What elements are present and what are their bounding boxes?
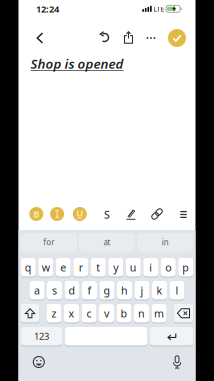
button[interactable]: j bbox=[134, 281, 149, 299]
button[interactable]: Link bbox=[150, 210, 163, 217]
staticText: u bbox=[130, 260, 137, 274]
staticText: U bbox=[76, 207, 83, 219]
button[interactable]: Undo bbox=[99, 31, 110, 42]
button[interactable]: for bbox=[21, 233, 77, 251]
staticText: l bbox=[175, 283, 178, 297]
button[interactable]: Dictate bbox=[172, 355, 183, 369]
button[interactable]: Delete bbox=[173, 304, 193, 322]
button[interactable]: Back bbox=[35, 31, 44, 44]
button[interactable]: k bbox=[152, 281, 167, 299]
staticText: q bbox=[25, 260, 32, 274]
staticText: a bbox=[34, 283, 40, 297]
button[interactable]: Done bbox=[168, 29, 186, 47]
button[interactable]: o bbox=[161, 258, 176, 276]
staticText: h bbox=[121, 283, 128, 297]
staticText: i bbox=[149, 260, 152, 274]
button[interactable]: v bbox=[99, 304, 114, 322]
button[interactable]: z bbox=[46, 304, 61, 322]
button[interactable]: l bbox=[169, 281, 184, 299]
button[interactable]: Emoji bbox=[33, 356, 45, 368]
staticText: d bbox=[68, 283, 75, 297]
staticText: k bbox=[156, 283, 162, 297]
staticText: B bbox=[33, 208, 39, 220]
staticText: for bbox=[43, 237, 54, 247]
button[interactable]: s bbox=[47, 281, 62, 299]
button[interactable]: Draw bbox=[125, 208, 136, 220]
button[interactable]: f bbox=[82, 281, 97, 299]
staticText: o bbox=[165, 260, 171, 274]
staticText: b bbox=[120, 306, 127, 320]
staticText: t bbox=[96, 260, 100, 274]
button[interactable]: Format bbox=[180, 211, 187, 218]
button[interactable]: Shift bbox=[20, 304, 39, 322]
staticText: 12:24 bbox=[36, 3, 59, 15]
button[interactable]: g bbox=[99, 281, 114, 299]
button[interactable]: h bbox=[117, 281, 132, 299]
staticText: in bbox=[162, 237, 169, 247]
button[interactable]: Space bbox=[65, 327, 147, 345]
staticText: f bbox=[87, 283, 91, 297]
staticText: p bbox=[182, 260, 189, 274]
staticText: n bbox=[138, 306, 145, 320]
staticText: v bbox=[104, 306, 109, 320]
staticText: at bbox=[103, 237, 110, 247]
button[interactable]: x bbox=[64, 304, 79, 322]
staticText: x bbox=[68, 306, 74, 320]
button[interactable]: Return bbox=[150, 327, 193, 345]
button[interactable]: q bbox=[21, 258, 36, 276]
button[interactable]: Share bbox=[123, 31, 133, 44]
staticText: S bbox=[104, 207, 110, 222]
button[interactable]: More bbox=[147, 37, 155, 39]
button[interactable]: in bbox=[137, 233, 193, 251]
button[interactable]: e bbox=[56, 258, 71, 276]
staticText: g bbox=[103, 283, 110, 297]
staticText: z bbox=[51, 306, 56, 320]
staticText: r bbox=[79, 260, 83, 274]
staticText: 123 bbox=[34, 330, 49, 342]
button[interactable]: b bbox=[116, 304, 131, 322]
staticText: s bbox=[52, 283, 57, 297]
button[interactable]: w bbox=[38, 258, 53, 276]
button[interactable]: m bbox=[151, 304, 166, 322]
staticText: e bbox=[60, 260, 66, 274]
button[interactable]: Italic bbox=[50, 207, 64, 221]
button[interactable]: Underline bbox=[73, 207, 87, 221]
button[interactable]: i bbox=[143, 258, 158, 276]
staticText: w bbox=[42, 260, 50, 274]
button[interactable]: Numbers bbox=[21, 327, 62, 345]
staticText: Shop is opened bbox=[30, 55, 123, 72]
button[interactable]: r bbox=[73, 258, 88, 276]
button[interactable]: c bbox=[81, 304, 96, 322]
button[interactable]: u bbox=[126, 258, 141, 276]
button[interactable]: Bold bbox=[29, 207, 43, 221]
button[interactable]: p bbox=[178, 258, 193, 276]
staticText: LTE bbox=[153, 5, 164, 13]
button[interactable]: Strikethrough bbox=[104, 207, 110, 222]
staticText: c bbox=[86, 306, 91, 320]
staticText: m bbox=[154, 306, 164, 320]
button[interactable]: n bbox=[134, 304, 149, 322]
staticText: j bbox=[140, 283, 143, 297]
button[interactable]: t bbox=[91, 258, 106, 276]
button[interactable]: d bbox=[64, 281, 79, 299]
button[interactable]: a bbox=[29, 281, 44, 299]
button[interactable]: y bbox=[108, 258, 123, 276]
staticText: y bbox=[113, 260, 118, 274]
button[interactable]: at bbox=[79, 233, 135, 251]
